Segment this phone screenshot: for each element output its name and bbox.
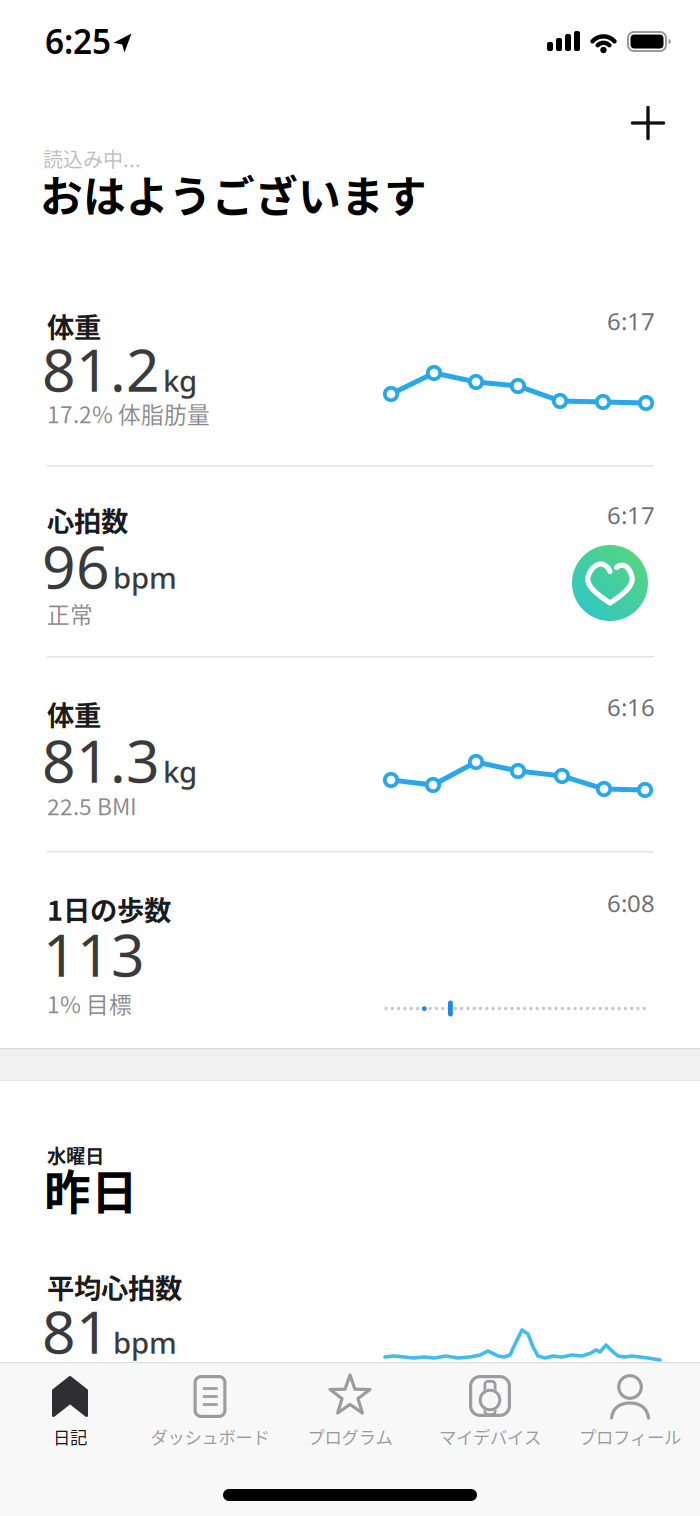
- button[interactable]: マイデバイス: [420, 1363, 560, 1463]
- staticText: 81.2: [42, 330, 160, 408]
- staticText: 96: [42, 527, 110, 605]
- staticText: プログラム: [307, 1424, 392, 1449]
- staticText: 日記: [53, 1424, 87, 1449]
- staticText: 1% 目標: [47, 987, 132, 1020]
- button[interactable]: ダッシュボード: [140, 1363, 280, 1463]
- staticText: 水曜日: [47, 1141, 104, 1169]
- button[interactable]: プログラム: [280, 1363, 420, 1463]
- button[interactable]: 平均心拍数: [0, 1260, 700, 1362]
- staticText: ダッシュボード: [150, 1424, 269, 1449]
- button[interactable]: プロフィール: [560, 1363, 700, 1463]
- staticText: 22.5 BMI: [47, 789, 137, 822]
- button[interactable]: Add: [620, 95, 676, 151]
- button[interactable]: 体重: [0, 290, 700, 465]
- staticText: 1日の歩数: [47, 889, 171, 929]
- staticText: 6:16: [607, 691, 655, 723]
- staticText: 113: [43, 915, 145, 993]
- staticText: 81.3: [42, 721, 160, 799]
- staticText: 体重: [47, 694, 101, 734]
- staticText: 6:08: [607, 887, 655, 919]
- staticText: 6:25: [45, 19, 111, 63]
- staticText: 17.2% 体脂肪量: [47, 397, 210, 430]
- staticText: bpm: [113, 558, 177, 597]
- staticText: 6:17: [607, 499, 655, 531]
- button[interactable]: 日記: [0, 1363, 140, 1463]
- staticText: bpm: [113, 1323, 177, 1362]
- staticText: 体重: [47, 306, 101, 346]
- staticText: 正常: [47, 597, 93, 630]
- staticText: 昨日: [44, 1155, 138, 1223]
- staticText: マイデバイス: [439, 1424, 541, 1449]
- button[interactable]: 体重: [0, 659, 700, 851]
- staticText: 読込み中...: [43, 144, 141, 173]
- staticText: 81: [42, 1292, 110, 1370]
- staticText: おはようございます: [40, 163, 427, 225]
- staticText: kg: [163, 361, 197, 400]
- staticText: プロフィール: [579, 1424, 681, 1449]
- staticText: kg: [163, 752, 197, 791]
- staticText: 平均心拍数: [47, 1267, 182, 1307]
- button[interactable]: 1日の歩数: [0, 853, 700, 1047]
- staticText: 心拍数: [47, 500, 128, 540]
- button[interactable]: 心拍数: [0, 467, 700, 655]
- staticText: 6:17: [607, 305, 655, 337]
